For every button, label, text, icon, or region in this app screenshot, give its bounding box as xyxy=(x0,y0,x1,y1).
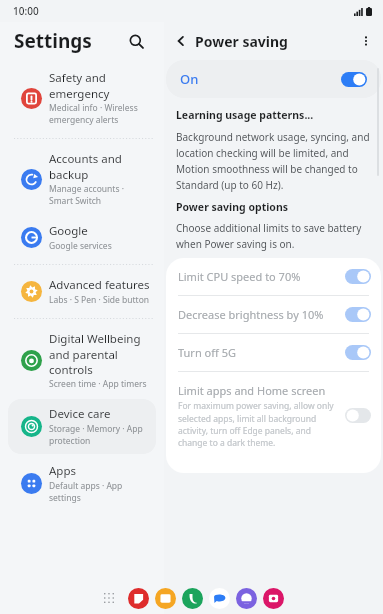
button[interactable]: Back xyxy=(168,28,194,54)
button[interactable]: Google xyxy=(8,216,156,259)
button[interactable]: Digital Wellbeing and parental controls xyxy=(8,324,156,397)
staticText: Choose additional limits to save battery… xyxy=(176,221,371,250)
button[interactable]: Advanced features xyxy=(8,270,156,313)
button[interactable]: camera xyxy=(263,588,284,609)
button[interactable]: msg xyxy=(209,588,230,609)
staticText: Advanced features xyxy=(49,277,150,293)
staticText: Turn off 5G xyxy=(178,345,236,360)
staticText: For maximum power saving, allow only sel… xyxy=(178,400,337,448)
staticText: Labs · S Pen · Side button xyxy=(49,294,150,306)
button[interactable] xyxy=(345,269,371,284)
button[interactable]: files xyxy=(155,588,176,609)
staticText: Accounts and backup xyxy=(49,151,150,182)
button[interactable] xyxy=(341,72,367,87)
staticText: Manage accounts · Smart Switch xyxy=(49,183,150,207)
button[interactable]: Apps xyxy=(8,456,156,511)
button[interactable]: All apps xyxy=(97,586,121,610)
staticText: Medical info · Wireless emergency alerts xyxy=(49,102,150,126)
staticText: Limit CPU speed to 70% xyxy=(178,269,301,284)
button[interactable]: Decrease brightness by 10% xyxy=(166,296,381,333)
staticText: Apps xyxy=(49,463,77,479)
button[interactable]: Accounts and backup xyxy=(8,144,156,214)
staticText: Limit apps and Home screen xyxy=(178,383,326,398)
button[interactable]: phone xyxy=(182,588,203,609)
button[interactable] xyxy=(345,307,371,322)
button[interactable]: browser xyxy=(236,588,257,609)
button[interactable]: Limit CPU speed to 70% xyxy=(166,258,381,295)
staticText: Background network usage, syncing, and l… xyxy=(176,130,371,191)
staticText: Safety and emergency xyxy=(49,70,150,101)
staticText: Storage · Memory · App protection xyxy=(49,423,150,447)
button[interactable] xyxy=(345,345,371,360)
staticText: Default apps · App settings xyxy=(49,480,150,504)
staticText: Power saving xyxy=(195,32,288,51)
staticText: Screen time · App timers xyxy=(49,378,147,390)
staticText: On xyxy=(180,70,199,88)
staticText: Google xyxy=(49,223,88,239)
button[interactable]: Search xyxy=(122,27,150,55)
button[interactable]: note xyxy=(128,588,149,609)
staticText: Google services xyxy=(49,240,112,252)
button[interactable] xyxy=(345,408,371,423)
staticText: 10:00 xyxy=(13,4,39,18)
staticText: Settings xyxy=(14,28,92,54)
staticText: Learning usage patterns... xyxy=(176,108,314,122)
staticText: Device care xyxy=(49,406,111,422)
staticText: Decrease brightness by 10% xyxy=(178,307,324,322)
button[interactable]: Turn off 5G xyxy=(166,334,381,371)
staticText: Digital Wellbeing and parental controls xyxy=(49,331,150,377)
button[interactable]: More options xyxy=(353,28,379,54)
button[interactable]: On xyxy=(166,60,381,98)
button[interactable]: Safety and emergency xyxy=(8,63,156,133)
button[interactable]: Device care xyxy=(8,399,156,454)
staticText: Power saving options xyxy=(176,200,288,214)
button[interactable]: Limit apps and Home screen xyxy=(166,372,381,459)
